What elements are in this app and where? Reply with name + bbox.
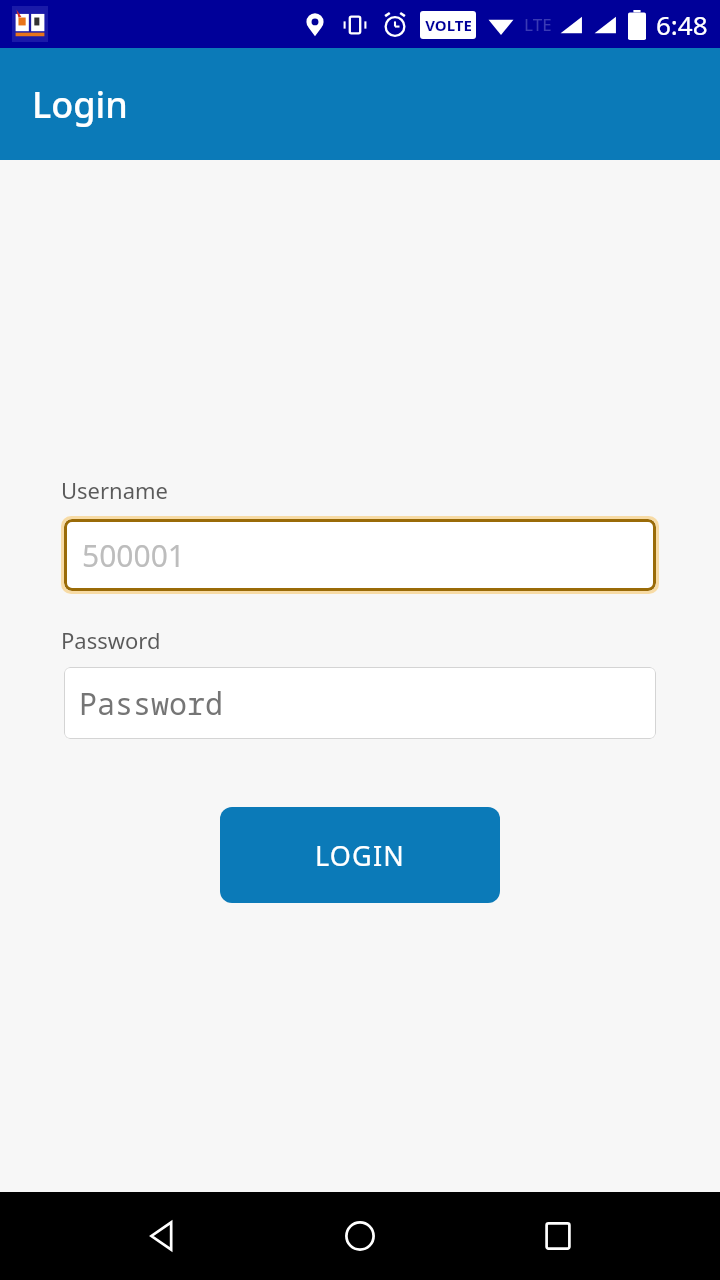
staticText: Password (61, 625, 161, 655)
staticText: Password (79, 683, 223, 724)
staticText: LOGIN (315, 837, 406, 874)
button[interactable]: Password (64, 667, 656, 739)
staticText: 500001 (82, 535, 185, 576)
staticText: LTE (524, 13, 552, 36)
staticText: Username (61, 475, 169, 505)
button[interactable]: Home (325, 1201, 395, 1271)
button[interactable]: Recent apps (523, 1201, 593, 1271)
button[interactable]: 500001 (64, 519, 656, 591)
button[interactable]: Back (128, 1201, 198, 1271)
button[interactable]: LOGIN (220, 807, 500, 903)
staticText: VOLTE (425, 15, 472, 35)
staticText: 6:48 (656, 7, 708, 42)
staticText: Login (32, 80, 128, 129)
